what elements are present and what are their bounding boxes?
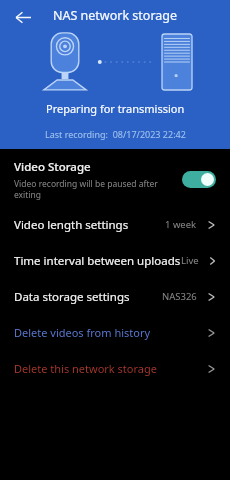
staticText: Last recording: 08/17/2023 22:42 bbox=[45, 128, 186, 140]
button[interactable]: Time interval between uploads bbox=[0, 243, 230, 278]
staticText: Delete this network storage bbox=[14, 361, 157, 376]
staticText: Live bbox=[181, 254, 199, 267]
button[interactable]: Delete this network storage bbox=[0, 351, 230, 386]
button[interactable]: Delete videos from history bbox=[0, 315, 230, 350]
staticText: Delete videos from history bbox=[14, 325, 151, 340]
staticText: 1 week bbox=[165, 218, 197, 231]
staticText: NAS326 bbox=[162, 290, 197, 303]
staticText: Video Storage bbox=[14, 159, 91, 175]
staticText: NAS network storage bbox=[0, 7, 230, 24]
staticText: Data storage settings bbox=[14, 289, 130, 305]
staticText: Time interval between uploads bbox=[14, 253, 181, 269]
button[interactable]: Toggle Video Storage bbox=[182, 171, 216, 188]
button[interactable]: Data storage settings bbox=[0, 279, 230, 314]
staticText: Video length settings bbox=[14, 217, 129, 233]
staticText: Preparing for transmission bbox=[46, 101, 185, 116]
button[interactable]: Video Storage bbox=[0, 153, 230, 205]
staticText: Video recording will be paused after exi… bbox=[14, 178, 174, 200]
button[interactable]: Back bbox=[8, 2, 38, 32]
button[interactable]: Video length settings bbox=[0, 207, 230, 242]
